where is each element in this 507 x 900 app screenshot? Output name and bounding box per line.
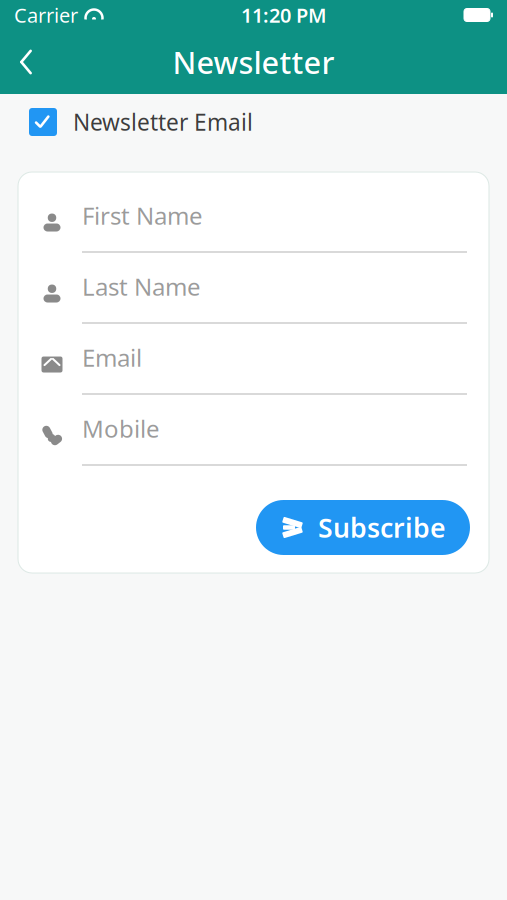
staticText: Email [82,342,142,373]
staticText: 11:20 PM [241,2,327,28]
staticText: Newsletter [172,42,334,82]
staticText: Newsletter Email [73,107,253,137]
staticText: First Name [82,200,203,231]
staticText: Carrier [14,2,78,28]
staticText: Subscribe [318,510,446,545]
staticText: Mobile [82,413,160,444]
button[interactable]: Back [0,34,52,90]
staticText: Last Name [82,271,201,302]
button[interactable]: Subscribe [256,500,470,555]
button[interactable]: Newsletter Email [0,94,507,150]
